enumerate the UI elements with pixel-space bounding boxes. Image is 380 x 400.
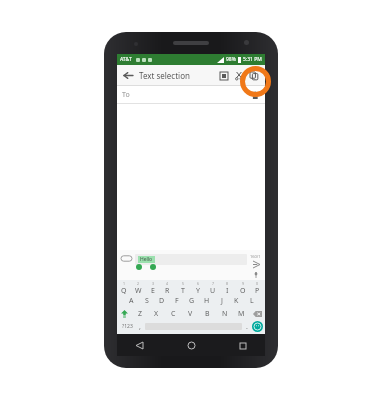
button[interactable]: B xyxy=(199,307,216,320)
staticText: 4 xyxy=(166,281,169,286)
staticText: U xyxy=(210,286,216,294)
button[interactable]: 9 xyxy=(235,281,250,294)
button[interactable]: S xyxy=(139,294,154,307)
staticText: 7 xyxy=(212,281,215,286)
staticText: L xyxy=(250,296,254,306)
staticText: 2 xyxy=(137,281,140,286)
staticText: AT&T xyxy=(120,56,132,63)
button[interactable]: ?123 xyxy=(119,320,135,333)
staticText: 160/1 xyxy=(250,254,261,259)
button[interactable]: F xyxy=(169,294,184,307)
staticText: 98% xyxy=(226,56,236,63)
staticText: Text selection xyxy=(139,70,190,81)
button[interactable]: H xyxy=(199,294,214,307)
button[interactable]: M xyxy=(233,307,250,320)
staticText: V xyxy=(188,309,193,319)
staticText: A xyxy=(129,296,134,306)
staticText: O xyxy=(240,286,246,294)
button[interactable]: V xyxy=(182,307,199,320)
button[interactable]: Hello xyxy=(135,254,247,265)
button[interactable]: 5 xyxy=(175,281,190,294)
button[interactable]: Z xyxy=(132,307,148,320)
button[interactable]: Emoji xyxy=(252,321,263,332)
button[interactable]: C xyxy=(165,307,182,320)
staticText: Z xyxy=(138,309,143,319)
staticText: D xyxy=(159,296,165,306)
staticText: To xyxy=(122,90,130,100)
button[interactable]: K xyxy=(229,294,244,307)
button[interactable]: N xyxy=(216,307,233,320)
button[interactable]: Voice input xyxy=(251,270,260,279)
staticText: Hello xyxy=(140,256,153,263)
staticText: B xyxy=(205,309,210,319)
button[interactable]: Copy xyxy=(246,68,261,83)
staticText: ?123 xyxy=(122,323,133,330)
staticText: M xyxy=(238,309,245,319)
staticText: 0 xyxy=(256,281,259,286)
staticText: S xyxy=(145,296,149,306)
button[interactable]: Add contact xyxy=(247,88,260,101)
staticText: 1 xyxy=(123,281,126,286)
button[interactable]: D xyxy=(154,294,169,307)
staticText: 8 xyxy=(226,281,229,286)
button[interactable]: Select all xyxy=(216,68,231,83)
button[interactable]: 6 xyxy=(190,281,205,294)
staticText: F xyxy=(175,296,179,306)
button[interactable]: J xyxy=(214,294,229,307)
button[interactable]: L xyxy=(244,294,259,307)
button[interactable]: Comma xyxy=(135,320,145,333)
button[interactable]: Home xyxy=(185,339,198,352)
button[interactable]: 1 xyxy=(117,281,131,294)
button[interactable]: 3 xyxy=(145,281,160,294)
button[interactable]: Cut xyxy=(231,68,246,83)
button[interactable]: 0 xyxy=(250,281,265,294)
button[interactable]: 2 xyxy=(131,281,145,294)
button[interactable]: Backspace xyxy=(250,307,265,320)
button[interactable]: Recents xyxy=(236,339,249,352)
staticText: 9 xyxy=(242,281,245,286)
staticText: 5 xyxy=(182,281,185,286)
staticText: K xyxy=(234,296,239,306)
button[interactable]: 7 xyxy=(205,281,220,294)
staticText: Q xyxy=(121,286,127,294)
staticText: J xyxy=(221,296,223,306)
button[interactable]: Shift xyxy=(117,307,132,320)
staticText: E xyxy=(151,286,155,294)
button[interactable]: 8 xyxy=(220,281,235,294)
button[interactable]: A xyxy=(123,294,139,307)
staticText: H xyxy=(204,296,210,306)
staticText: W xyxy=(135,286,142,294)
staticText: I xyxy=(226,286,229,294)
button[interactable]: Period xyxy=(242,320,252,333)
button[interactable]: 4 xyxy=(160,281,175,294)
button[interactable]: G xyxy=(184,294,199,307)
button[interactable]: Attach xyxy=(121,254,132,263)
staticText: . xyxy=(246,322,248,332)
button[interactable]: X xyxy=(148,307,165,320)
staticText: Y xyxy=(196,286,200,294)
other: Copy highlight xyxy=(240,66,271,97)
button[interactable]: Back xyxy=(133,339,146,352)
staticText: 5:31 PM xyxy=(243,56,262,63)
staticText: C xyxy=(171,309,176,319)
staticText: T xyxy=(181,286,185,294)
button[interactable]: Back xyxy=(121,68,135,82)
staticText: G xyxy=(189,296,195,306)
staticText: P xyxy=(255,286,260,294)
button[interactable]: Send xyxy=(251,259,261,269)
staticText: 3 xyxy=(152,281,155,286)
staticText: X xyxy=(154,309,159,319)
staticText: R xyxy=(165,286,170,294)
staticText: N xyxy=(222,309,228,319)
staticText: , xyxy=(139,322,141,332)
staticText: 6 xyxy=(197,281,200,286)
